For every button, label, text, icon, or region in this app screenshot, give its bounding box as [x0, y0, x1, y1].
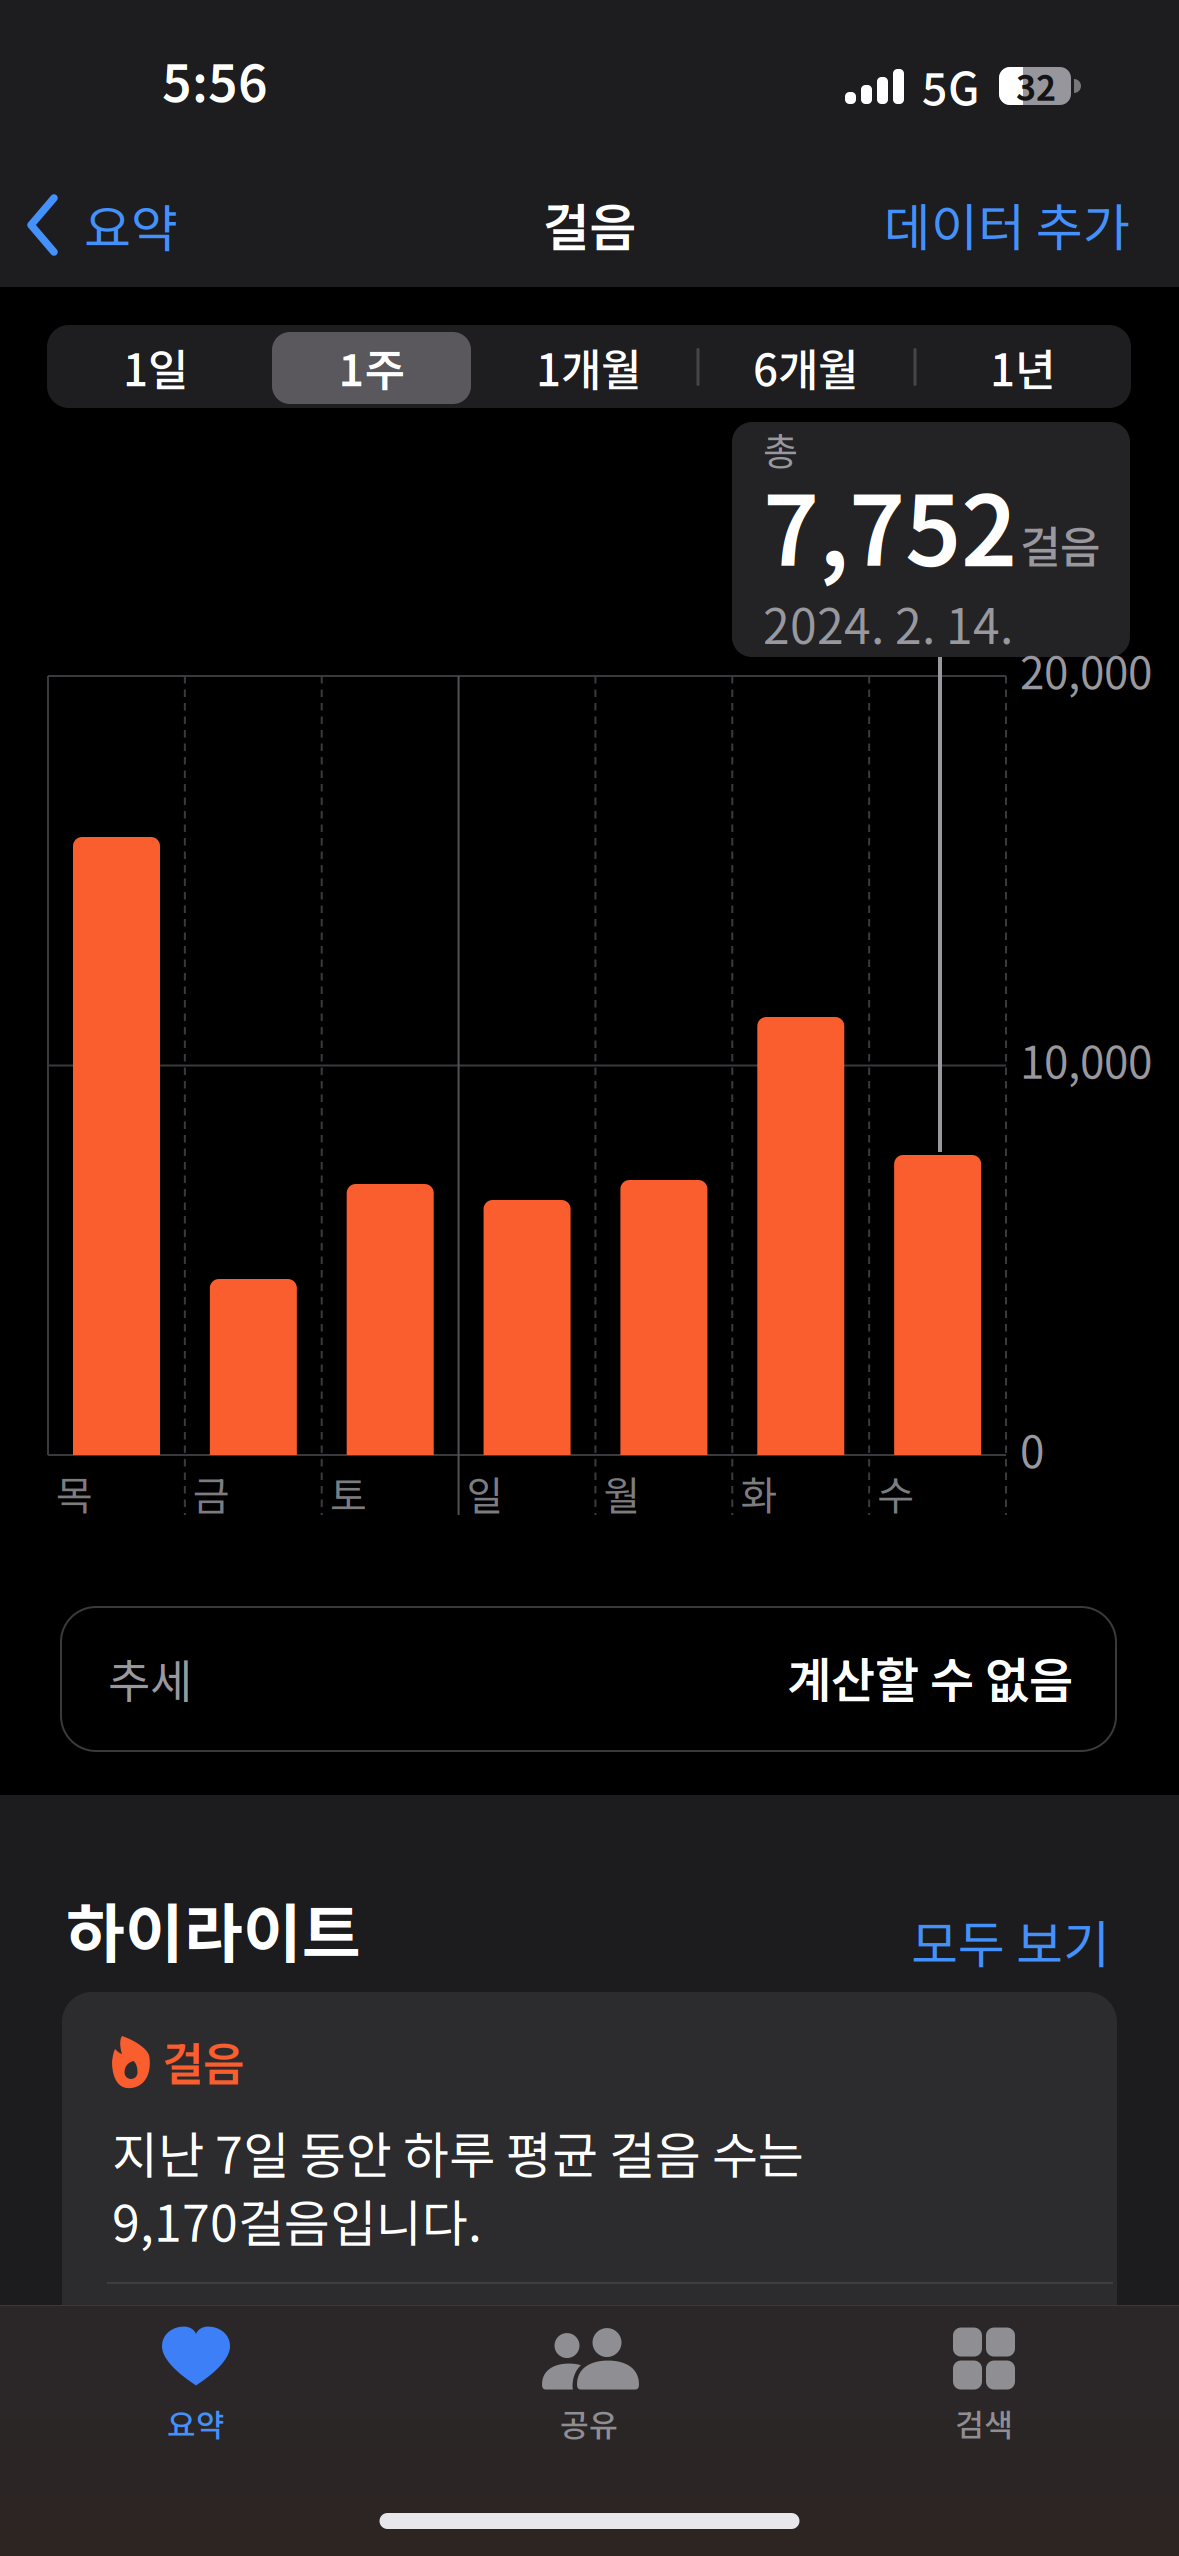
staticText: 10,000 — [1020, 1028, 1152, 1091]
staticText: 토 — [330, 1464, 367, 1522]
staticText: 모두 보기 — [911, 1904, 1110, 1978]
staticText: 9,170걸음입니다. — [112, 2184, 482, 2256]
staticText: 2024. 2. 14. — [763, 588, 1013, 658]
staticText: 1일 — [123, 335, 188, 399]
staticText: 요약 — [167, 2401, 225, 2445]
button[interactable]: 요약 — [26, 180, 246, 270]
staticText: 5G — [922, 53, 980, 119]
staticText: 일 — [467, 1464, 504, 1522]
button[interactable]: 추세 — [60, 1606, 1117, 1752]
button[interactable]: 6개월 — [697, 325, 914, 408]
button[interactable]: 1일 — [47, 325, 264, 408]
button[interactable]: 1년 — [914, 325, 1131, 408]
staticText: 요약 — [84, 188, 178, 262]
staticText: 목 — [56, 1464, 93, 1522]
staticText: 1개월 — [536, 335, 641, 399]
staticText: 수 — [877, 1464, 914, 1522]
staticText: 0 — [1020, 1417, 1044, 1481]
button[interactable]: 데이터 추가 — [830, 179, 1130, 269]
button[interactable]: 걸음 — [62, 1992, 1117, 2556]
button[interactable]: 1개월 — [480, 325, 697, 408]
staticText: 5:56 — [162, 43, 268, 117]
button[interactable]: 공유 — [439, 2296, 739, 2476]
staticText: 공유 — [560, 2401, 618, 2445]
staticText: 금 — [193, 1464, 230, 1522]
staticText: 지난 7일 동안 하루 평균 걸음 수는 — [112, 2116, 804, 2188]
staticText: 월 — [603, 1464, 640, 1522]
button[interactable]: 모두 보기 — [810, 1906, 1110, 1976]
staticText: 6개월 — [753, 335, 858, 399]
staticText: 화 — [740, 1464, 777, 1522]
staticText: 32 — [1016, 61, 1056, 111]
staticText: 하이라이트 — [66, 1883, 361, 1975]
button[interactable]: 요약 — [46, 2296, 346, 2476]
staticText: 1주 — [338, 335, 404, 399]
staticText: 검색 — [955, 2401, 1013, 2445]
staticText: 1년 — [990, 335, 1055, 399]
staticText: 총 — [763, 421, 798, 476]
staticText: 계산할 수 없음 — [787, 1642, 1073, 1712]
staticText: 7,752 — [763, 454, 1017, 594]
staticText: 데이터 추가 — [884, 187, 1130, 261]
button[interactable]: 검색 — [834, 2296, 1134, 2476]
button[interactable]: 1주 — [263, 325, 480, 408]
staticText: 추세 — [108, 1645, 192, 1711]
staticText: 걸음 — [162, 2028, 244, 2094]
staticText: 걸음 — [1020, 512, 1100, 576]
staticText: 걸음 — [542, 187, 636, 261]
staticText: 20,000 — [1020, 638, 1152, 702]
